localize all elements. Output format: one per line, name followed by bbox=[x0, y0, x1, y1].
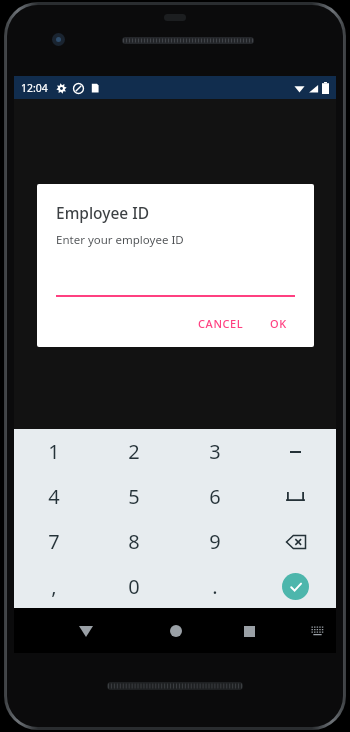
button[interactable]: Space bbox=[255, 474, 336, 519]
staticText: , bbox=[51, 573, 57, 600]
staticText: 6 bbox=[209, 483, 221, 510]
button[interactable]: 9 bbox=[174, 519, 255, 564]
staticText: 4 bbox=[48, 483, 60, 510]
button[interactable]: OK bbox=[262, 310, 295, 337]
button[interactable]: 4 bbox=[14, 474, 94, 519]
staticText: CANCEL bbox=[198, 316, 244, 331]
staticText: 2 bbox=[128, 438, 140, 465]
button[interactable]: Switch keyboard bbox=[304, 618, 330, 644]
button[interactable]: 5 bbox=[94, 474, 174, 519]
button[interactable]: Recent apps bbox=[232, 614, 266, 648]
staticText: . bbox=[212, 573, 218, 600]
button[interactable]: 3 bbox=[174, 429, 255, 474]
button[interactable]: 6 bbox=[174, 474, 255, 519]
button[interactable]: 2 bbox=[94, 429, 174, 474]
button[interactable]: Dash bbox=[255, 429, 336, 474]
staticText: 5 bbox=[128, 483, 140, 510]
staticText: 0 bbox=[128, 573, 140, 600]
staticText: 9 bbox=[209, 528, 221, 555]
staticText: Employee ID bbox=[56, 202, 150, 223]
button[interactable]: 0 bbox=[94, 564, 174, 608]
staticText: 3 bbox=[209, 438, 221, 465]
button[interactable]: CANCEL bbox=[190, 310, 252, 337]
button[interactable]: . bbox=[174, 564, 255, 608]
staticText: 1 bbox=[48, 438, 60, 465]
button[interactable]: 1 bbox=[14, 429, 94, 474]
button[interactable]: Home bbox=[159, 614, 193, 648]
button[interactable]: 7 bbox=[14, 519, 94, 564]
button[interactable]: Enter bbox=[255, 564, 336, 608]
staticText: 7 bbox=[48, 528, 60, 555]
staticText: Enter your employee ID bbox=[56, 232, 184, 248]
button[interactable] bbox=[56, 279, 295, 297]
button[interactable]: , bbox=[14, 564, 94, 608]
staticText: 8 bbox=[128, 528, 140, 555]
staticText: 12:04 bbox=[21, 81, 48, 95]
button[interactable]: 8 bbox=[94, 519, 174, 564]
staticText: OK bbox=[270, 316, 287, 331]
button[interactable]: Backspace bbox=[255, 519, 336, 564]
button[interactable]: Back bbox=[69, 614, 103, 648]
